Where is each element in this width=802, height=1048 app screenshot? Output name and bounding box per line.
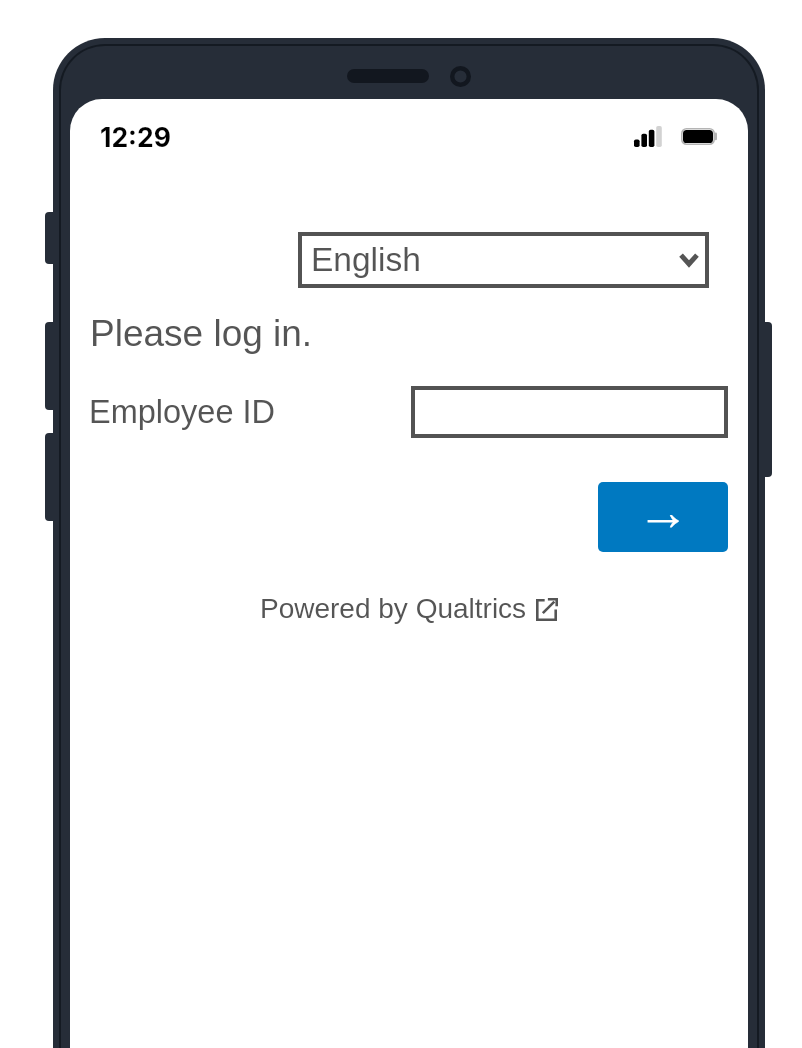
button[interactable]: Employee ID input <box>411 386 728 438</box>
button[interactable]: Submit <box>598 482 728 552</box>
button[interactable]: Powered by Qualtrics <box>260 593 558 624</box>
staticText: English <box>311 241 421 278</box>
staticText: Employee ID <box>89 394 276 430</box>
staticText: Powered by Qualtrics <box>260 593 527 624</box>
staticText: Please log in. <box>90 313 313 354</box>
staticText: → <box>637 483 689 541</box>
staticText: 12:29 <box>100 121 171 153</box>
button[interactable]: English <box>298 232 709 288</box>
